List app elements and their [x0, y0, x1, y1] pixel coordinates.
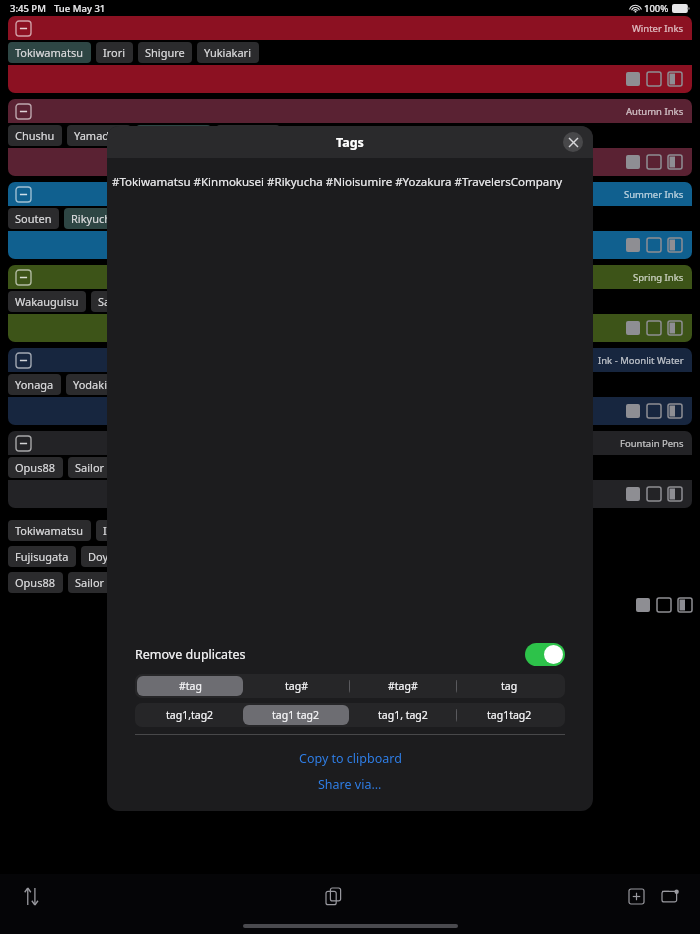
button[interactable]: tag — [456, 676, 563, 696]
staticText: Yonaga — [15, 377, 54, 392]
button[interactable]: Sort — [16, 881, 46, 911]
button[interactable]: Collapse Winter Inks — [8, 16, 692, 93]
button[interactable]: Outline — [647, 238, 661, 252]
button[interactable]: Filled — [626, 404, 640, 418]
button[interactable]: Yonaga — [8, 374, 61, 395]
button[interactable]: Irori — [96, 42, 133, 63]
button[interactable]: Half — [668, 404, 682, 418]
button[interactable]: Half — [668, 238, 682, 252]
button[interactable]: Filled — [636, 598, 650, 612]
button[interactable]: Rikyucha — [64, 208, 125, 229]
button[interactable]: Share via... — [107, 773, 593, 795]
button[interactable]: Collapse Summer Inks — [8, 182, 692, 259]
button[interactable]: Outline — [647, 72, 661, 86]
button[interactable]: Outline — [647, 487, 661, 501]
button[interactable]: Filled — [626, 72, 640, 86]
button[interactable]: Half — [668, 72, 682, 86]
button[interactable]: Collapse Ink - Moonlit Water — [16, 353, 31, 368]
button[interactable]: Add item — [622, 882, 650, 910]
button[interactable]: Half — [668, 487, 682, 501]
button[interactable]: Filled — [626, 321, 640, 335]
button[interactable]: Doyo — [81, 546, 122, 567]
button[interactable]: Outline — [647, 155, 661, 169]
button[interactable]: Outline — [657, 598, 671, 612]
button[interactable]: tag1,tag2 — [137, 705, 243, 725]
staticText: 3:45 PM — [10, 2, 46, 15]
staticText: tag1 tag2 — [272, 708, 320, 722]
staticText: 100% — [644, 2, 669, 15]
button[interactable]: Yukiakari — [197, 42, 259, 63]
button[interactable]: Collapse Winter Inks — [16, 21, 31, 36]
button[interactable]: Opus88 — [8, 457, 63, 478]
button[interactable]: Sailor — [68, 457, 112, 478]
button[interactable]: Filled — [626, 238, 640, 252]
button[interactable]: Half — [668, 155, 682, 169]
button[interactable]: Half — [678, 598, 692, 612]
button[interactable]: tag# — [243, 676, 349, 696]
button[interactable]: tag1 tag2 — [243, 705, 349, 725]
button[interactable]: #tag# — [349, 676, 456, 696]
staticText: Opus88 — [15, 575, 56, 590]
button[interactable]: Collapse Ink - Moonlit Water — [8, 348, 692, 425]
button[interactable]: Kinmokusei — [136, 125, 211, 146]
button[interactable]: Remove duplicates — [135, 637, 565, 671]
button[interactable]: Filled — [626, 155, 640, 169]
button[interactable]: Collapse Autumn Inks — [16, 104, 31, 119]
button[interactable]: Tokiwamatsu — [8, 42, 91, 63]
staticText: tag# — [285, 679, 308, 693]
staticText: Autumn Inks — [626, 105, 684, 118]
staticText: Winter Inks — [632, 22, 684, 35]
button[interactable]: Collapse Fountain Pens — [16, 436, 31, 451]
staticText: Ink - Moonlit Water — [598, 354, 684, 367]
button[interactable]: Copy to clipboard — [107, 747, 593, 769]
button[interactable]: New folder — [656, 882, 684, 910]
button[interactable]: Fujisugata — [8, 546, 76, 567]
button[interactable]: Sailor — [68, 572, 112, 593]
button[interactable]: Outline — [647, 404, 661, 418]
button[interactable]: Outline — [647, 321, 661, 335]
staticText: tag — [501, 679, 518, 693]
button[interactable]: Collapse Spring Inks — [8, 265, 692, 342]
button[interactable]: Collapse Spring Inks — [16, 270, 31, 285]
button[interactable]: Collapse Summer Inks — [16, 187, 31, 202]
staticText: Tags — [336, 134, 364, 151]
button[interactable]: Half — [668, 321, 682, 335]
button[interactable]: Collapse Autumn Inks — [8, 99, 692, 176]
button[interactable]: Close — [563, 132, 583, 152]
button[interactable]: Chushu — [8, 125, 62, 146]
button[interactable]: #tag — [137, 676, 243, 696]
button[interactable]: Irori — [96, 520, 133, 541]
button[interactable]: Souten — [8, 208, 59, 229]
staticText: Copy to clipboard — [299, 750, 402, 767]
button[interactable]: Yamadori — [67, 125, 131, 146]
button[interactable]: Sakura — [91, 291, 141, 312]
button[interactable]: Collapse Fountain Pens — [8, 431, 692, 508]
button[interactable]: Wakauguisu — [8, 291, 86, 312]
button[interactable]: Opus88 — [8, 572, 63, 593]
button[interactable]: Copy — [318, 880, 350, 912]
button[interactable]: tag1, tag2 — [349, 705, 456, 725]
button[interactable]: Filled — [626, 487, 640, 501]
staticText: Share via... — [318, 776, 382, 793]
button[interactable]: Shigure — [138, 42, 192, 63]
button[interactable]: tag1tag2 — [456, 705, 563, 725]
staticText: Spring Inks — [633, 271, 684, 284]
button[interactable]: Yodaki — [66, 374, 114, 395]
button[interactable]: Tokiwamatsu — [8, 520, 91, 541]
